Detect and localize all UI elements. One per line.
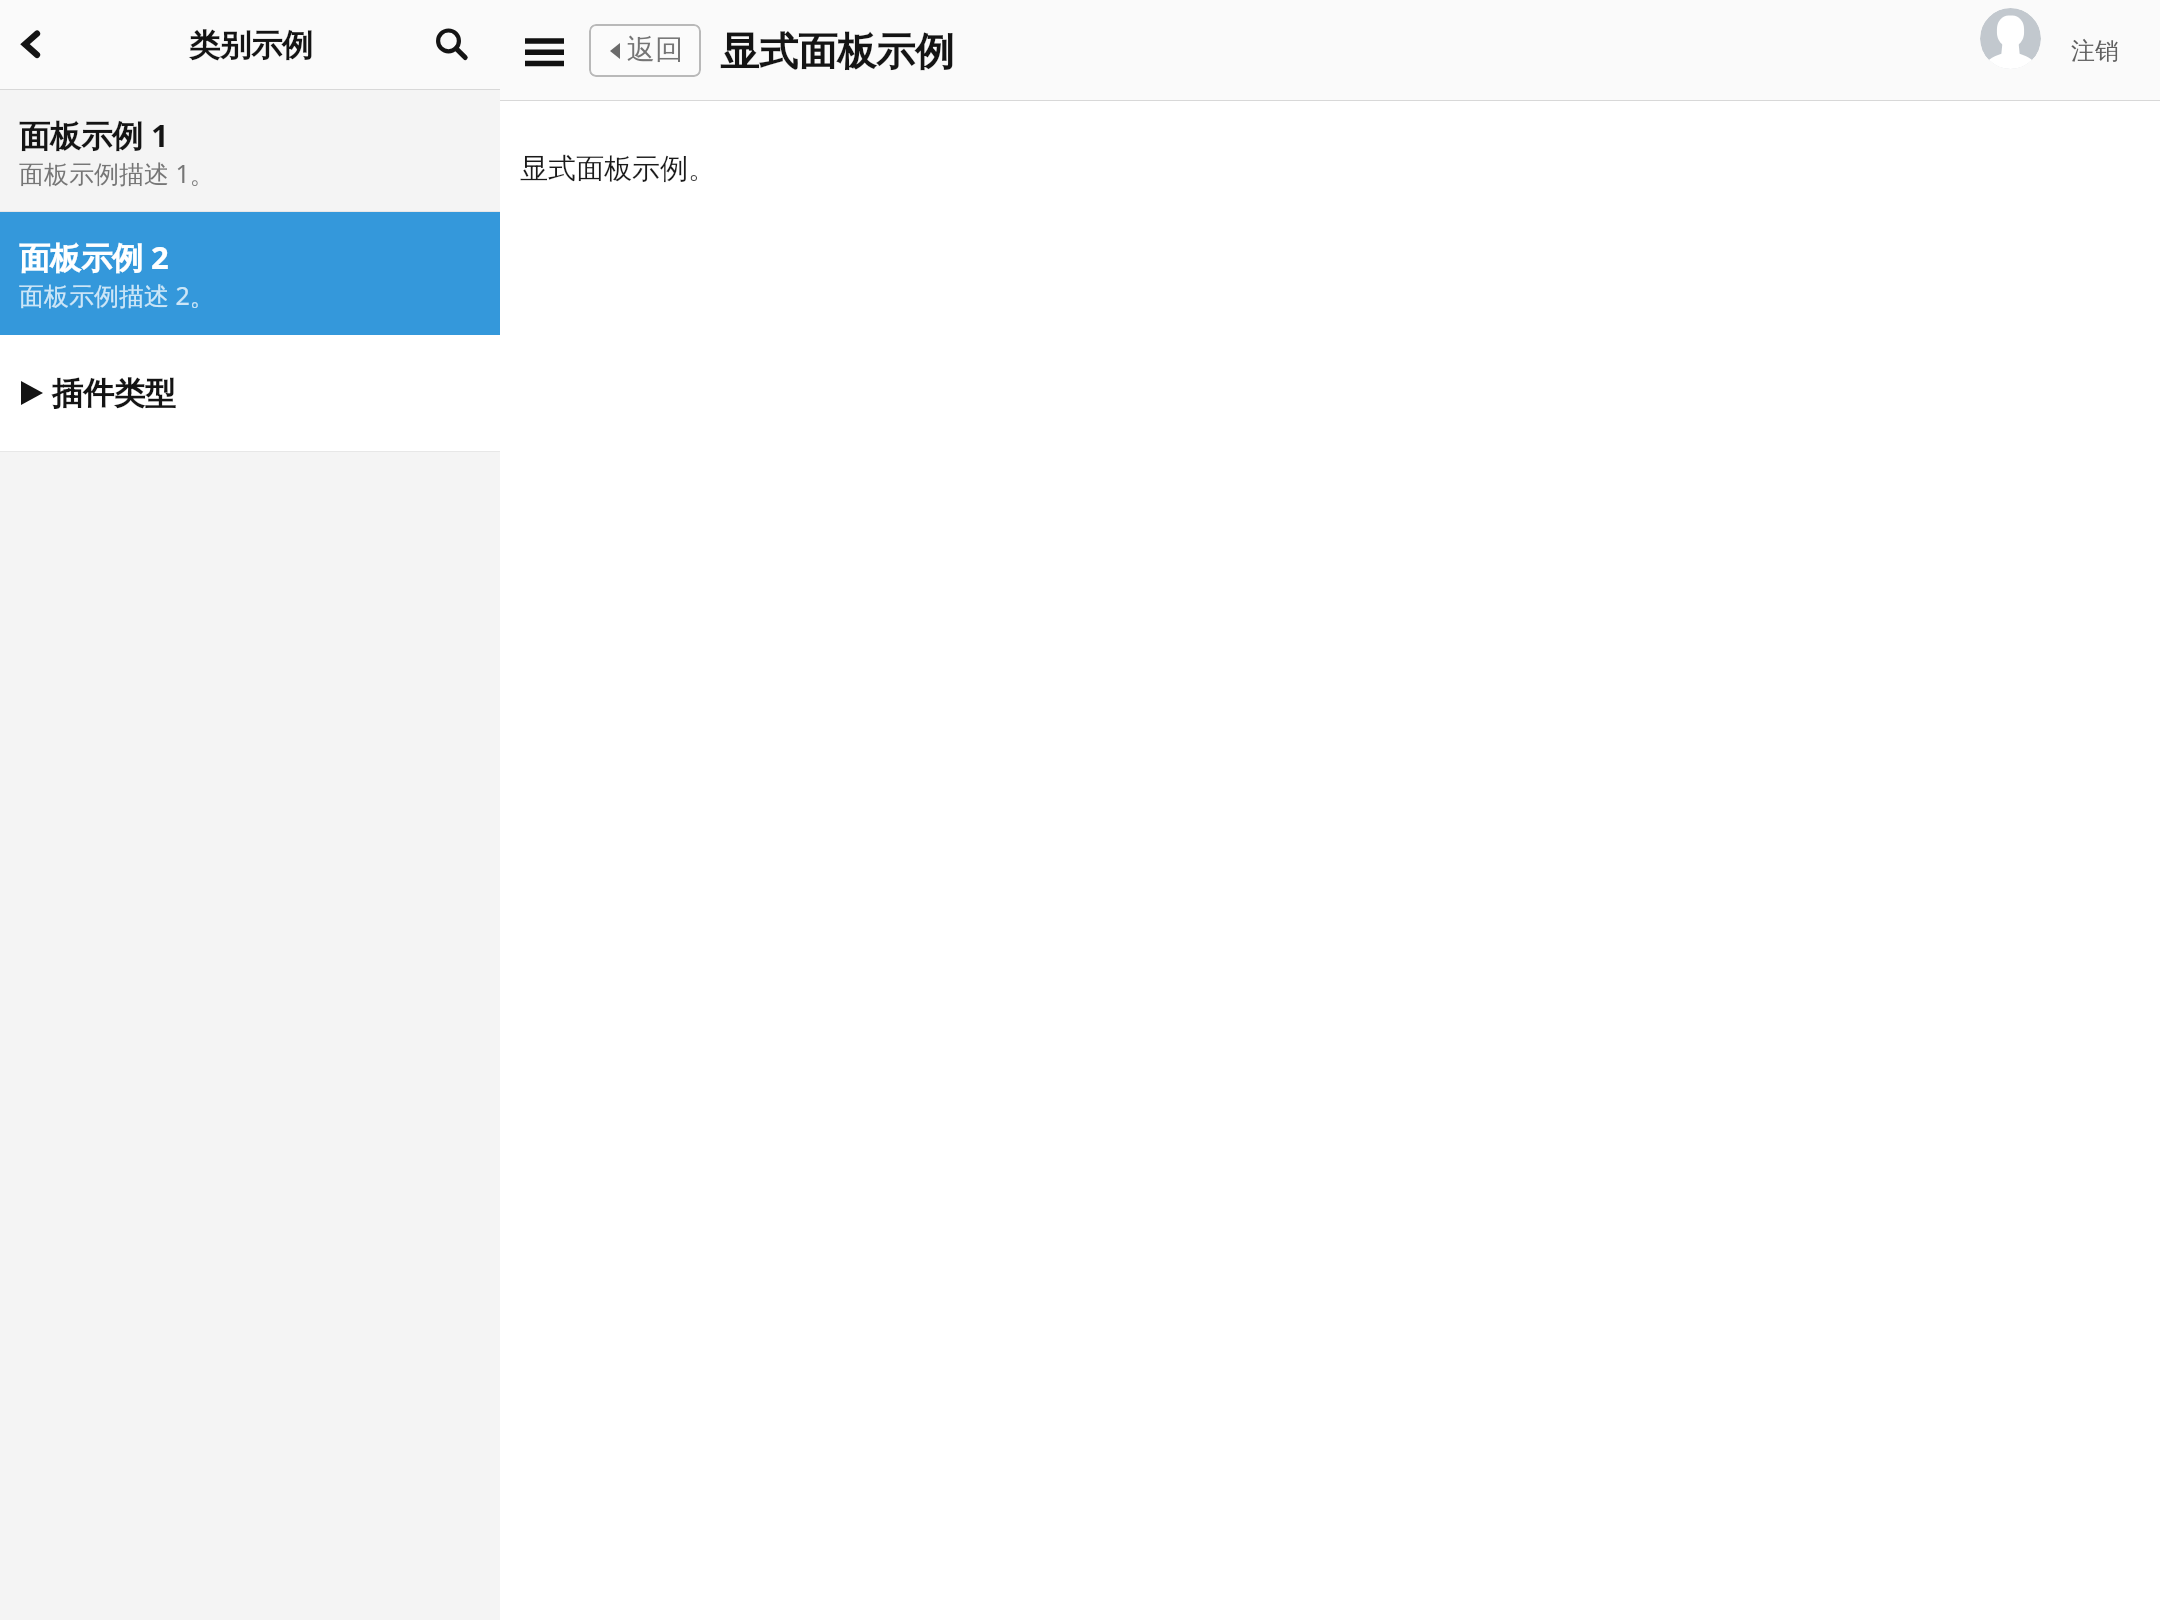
staticText: 面板示例 2 <box>19 236 169 278</box>
staticText: 返回 <box>627 32 683 67</box>
button[interactable]: 返回 <box>589 24 701 77</box>
staticText: 面板示例描述 1。 <box>19 156 215 190</box>
staticText: 类别示例 <box>189 26 313 65</box>
button[interactable]: 注销 <box>1980 20 2160 81</box>
button[interactable]: 面板示例 1 <box>0 90 500 211</box>
button[interactable]: Back <box>0 14 62 76</box>
staticText: 面板示例描述 2。 <box>19 278 215 312</box>
button[interactable]: 插件类型 <box>0 335 500 451</box>
staticText: 注销 <box>2071 36 2119 66</box>
staticText: 插件类型 <box>52 374 176 413</box>
staticText: 面板示例 1 <box>19 114 169 156</box>
staticText: 显式面板示例。 <box>520 151 716 186</box>
button[interactable]: 面板示例 2 <box>0 212 500 335</box>
button[interactable]: Menu <box>520 29 568 71</box>
button[interactable]: Search <box>416 14 478 76</box>
staticText: 显式面板示例 <box>720 27 954 76</box>
